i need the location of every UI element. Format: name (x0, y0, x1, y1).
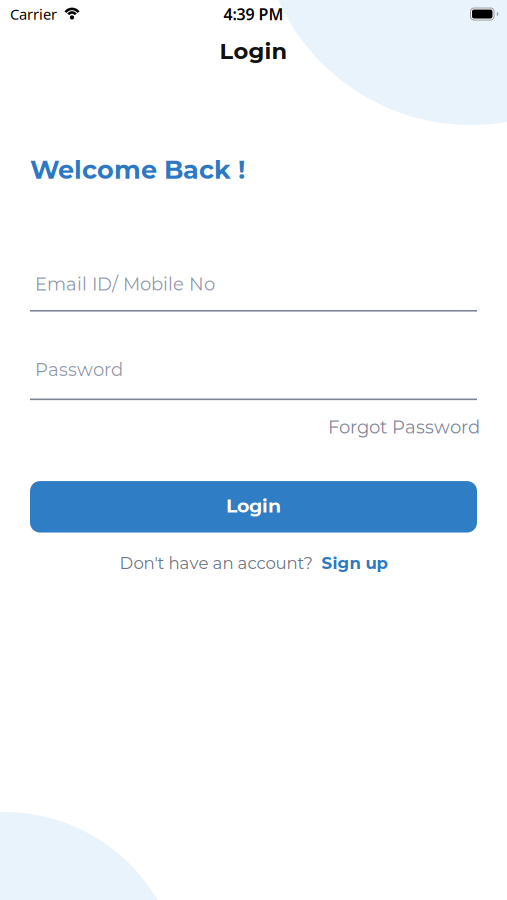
staticText: 4:39 PM (223, 3, 283, 25)
staticText: Email ID/ Mobile No (35, 273, 215, 295)
staticText: Welcome Back ! (30, 154, 245, 185)
staticText: Forgot Password (328, 416, 480, 438)
staticText: Login (226, 494, 281, 517)
button[interactable]: Email ID/ Mobile No (30, 273, 477, 311)
staticText: Sign up (321, 553, 387, 573)
button[interactable]: Sign up (321, 553, 387, 573)
button[interactable]: Login (30, 481, 477, 533)
staticText: Carrier (10, 4, 57, 24)
button[interactable]: Password (30, 359, 477, 400)
staticText: Don't have an account? (119, 553, 312, 573)
staticText: Login (219, 37, 287, 65)
button[interactable]: Forgot Password (328, 416, 477, 438)
staticText: Password (35, 359, 123, 380)
